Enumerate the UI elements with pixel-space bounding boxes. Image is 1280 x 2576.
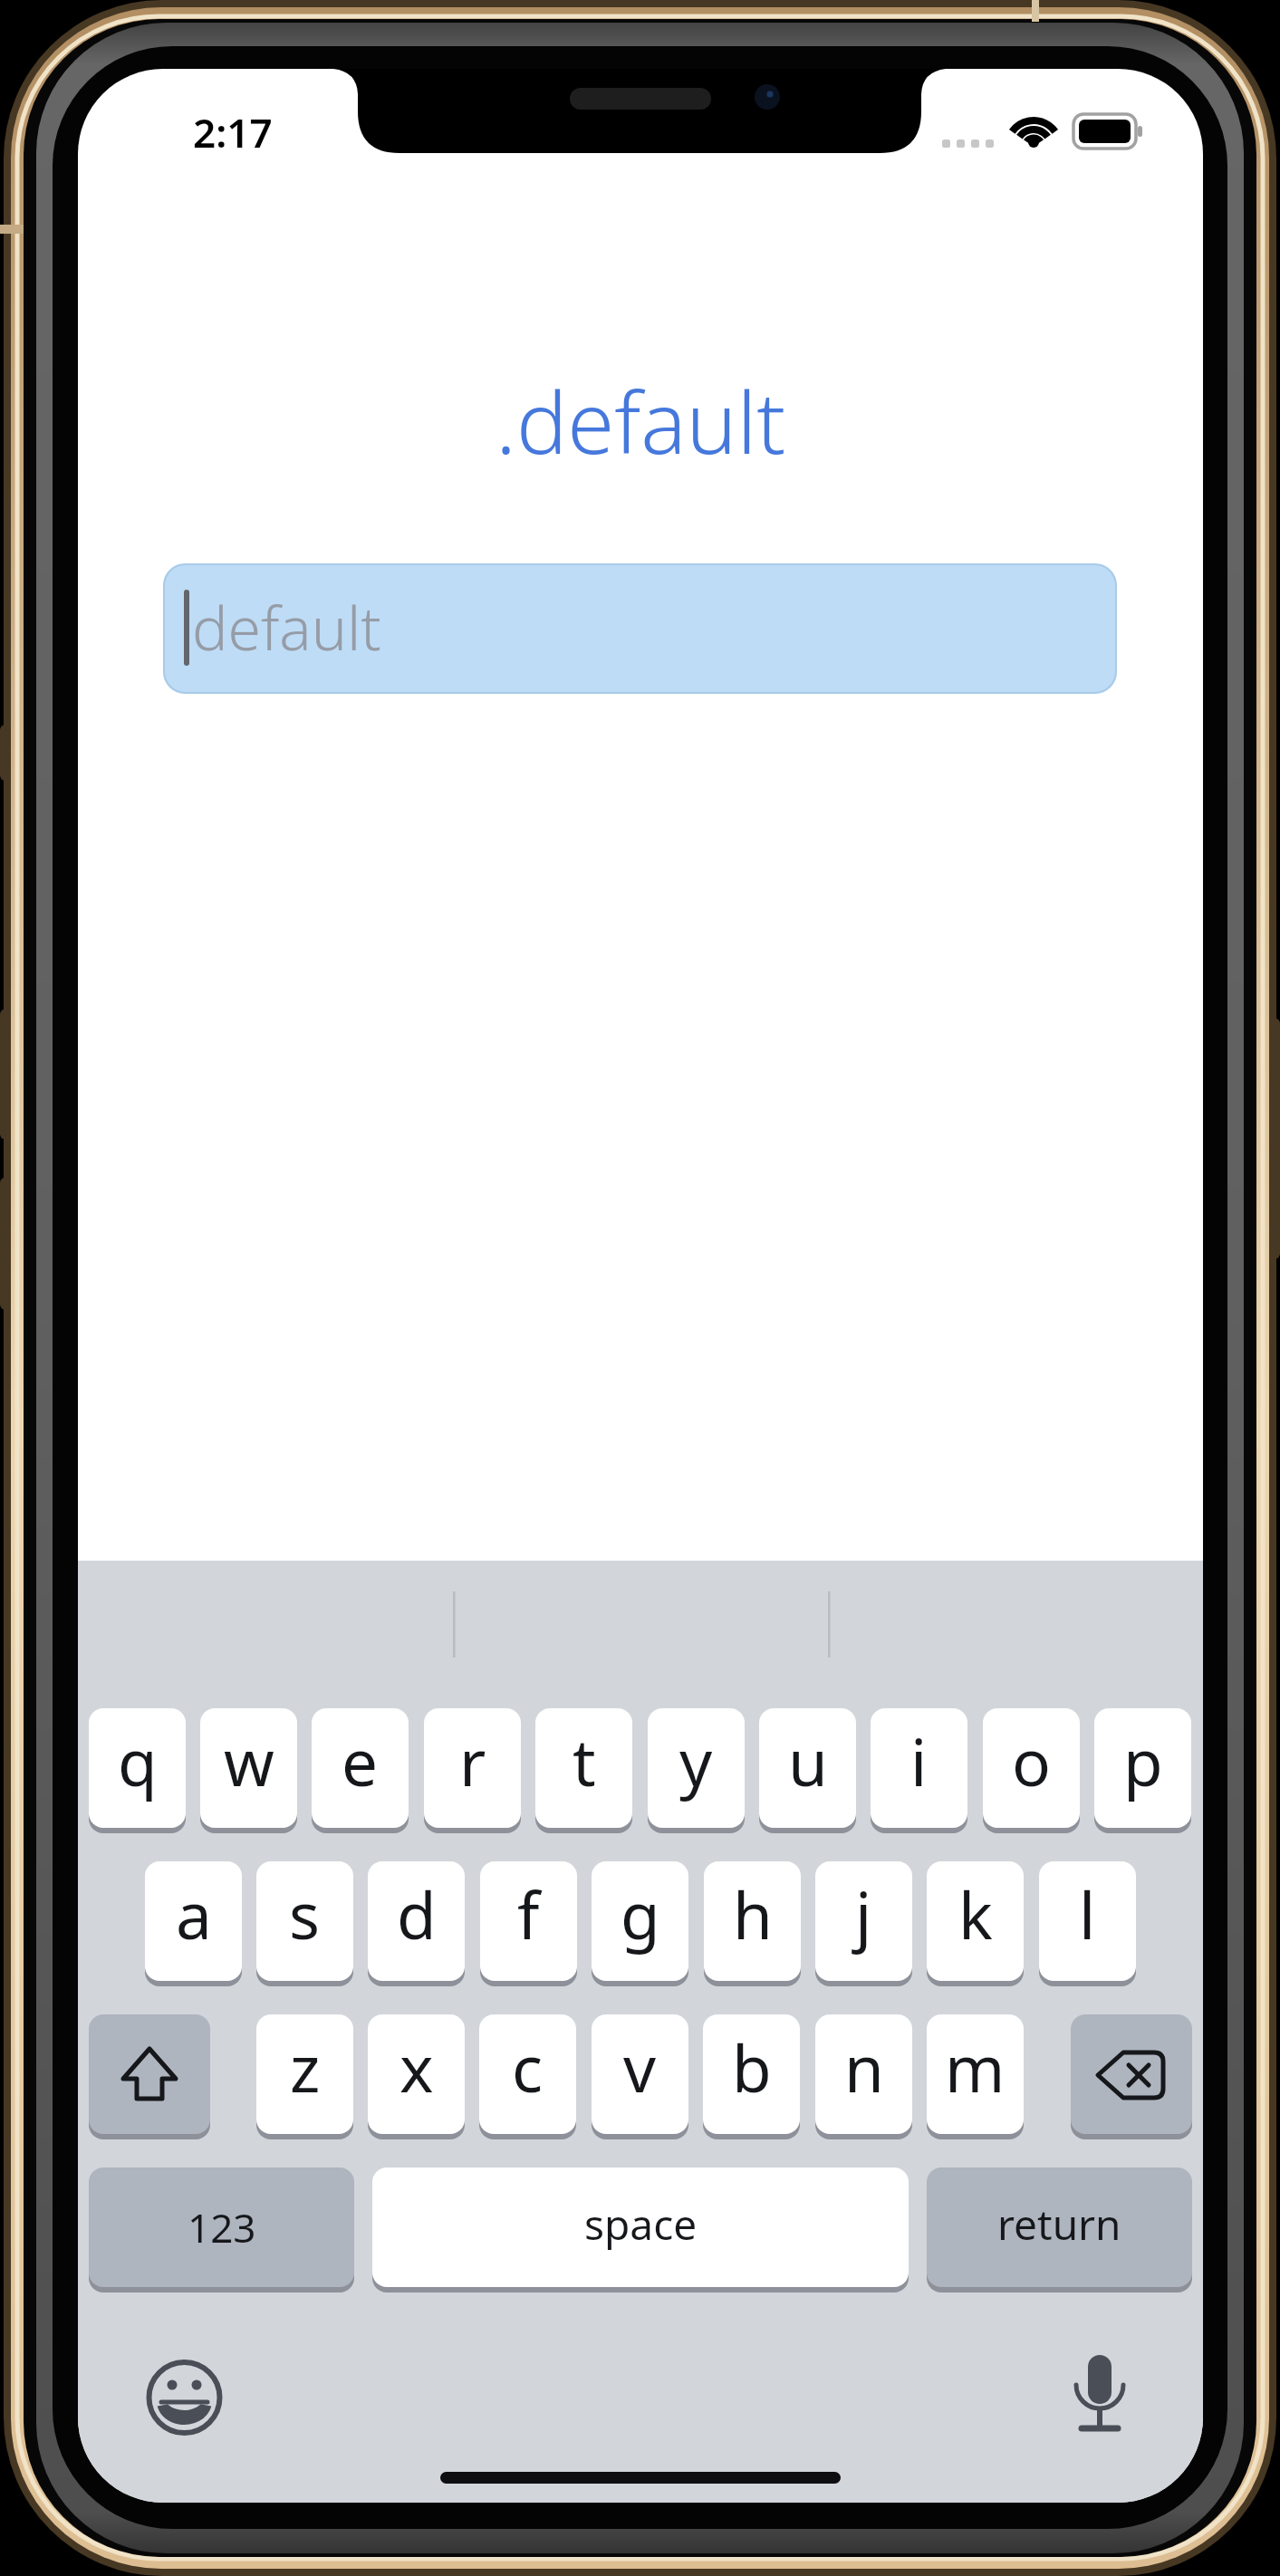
staticText: t	[573, 1717, 596, 1805]
button[interactable]: x	[368, 2014, 465, 2139]
staticText: n	[844, 2023, 884, 2111]
button[interactable]: r	[424, 1708, 521, 1833]
button[interactable]: w	[200, 1708, 297, 1833]
button[interactable]: s	[256, 1861, 353, 1986]
staticText: 123	[188, 2200, 256, 2254]
staticText: e	[342, 1717, 379, 1805]
button[interactable]: k	[927, 1861, 1024, 1986]
staticText: s	[289, 1870, 321, 1958]
staticText: .default	[496, 363, 786, 479]
staticText: space	[584, 2196, 698, 2253]
staticText: return	[997, 2196, 1121, 2253]
staticText: p	[1123, 1717, 1163, 1805]
button[interactable]: u	[759, 1708, 856, 1833]
staticText: z	[290, 2023, 321, 2111]
button[interactable]: e	[312, 1708, 409, 1833]
button[interactable]: 123	[89, 2167, 354, 2292]
button[interactable]: default	[163, 563, 1117, 694]
button[interactable]	[1071, 2014, 1192, 2139]
button[interactable]: f	[480, 1861, 577, 1986]
button[interactable]: space	[372, 2167, 909, 2292]
staticText: default	[192, 586, 381, 668]
button[interactable]: m	[927, 2014, 1024, 2139]
button[interactable]: h	[704, 1861, 801, 1986]
button[interactable]: a	[145, 1861, 242, 1986]
staticText: u	[788, 1717, 828, 1805]
staticText: v	[623, 2023, 657, 2111]
button[interactable]: q	[89, 1708, 186, 1833]
button[interactable]	[1063, 2355, 1136, 2433]
button[interactable]: y	[648, 1708, 745, 1833]
button[interactable]: b	[703, 2014, 800, 2139]
button[interactable]: z	[256, 2014, 353, 2139]
button[interactable]: g	[592, 1861, 688, 1986]
staticText: q	[118, 1717, 158, 1805]
button[interactable]: p	[1094, 1708, 1191, 1833]
staticText: a	[176, 1870, 212, 1958]
staticText: c	[512, 2023, 544, 2111]
button[interactable]: d	[368, 1861, 465, 1986]
button[interactable]: o	[983, 1708, 1080, 1833]
staticText: i	[910, 1717, 928, 1805]
button[interactable]: i	[871, 1708, 967, 1833]
button[interactable]	[89, 2014, 210, 2139]
staticText: l	[1079, 1870, 1096, 1958]
button[interactable]: return	[927, 2167, 1192, 2292]
button[interactable]	[149, 2362, 221, 2435]
button[interactable]: 2:17	[151, 105, 314, 159]
button[interactable]: n	[815, 2014, 912, 2139]
staticText: w	[224, 1717, 274, 1805]
staticText: b	[732, 2023, 772, 2111]
button[interactable]: l	[1039, 1861, 1136, 1986]
staticText: 2:17	[193, 105, 273, 159]
button[interactable]: v	[592, 2014, 688, 2139]
staticText: j	[855, 1870, 872, 1958]
staticText: x	[399, 2023, 434, 2111]
staticText: d	[397, 1870, 437, 1958]
staticText: k	[958, 1870, 993, 1958]
staticText: g	[621, 1870, 660, 1958]
staticText: y	[679, 1717, 713, 1805]
staticText: h	[733, 1870, 773, 1958]
staticText: m	[945, 2023, 1006, 2111]
button[interactable]: c	[479, 2014, 576, 2139]
staticText: o	[1012, 1717, 1051, 1805]
button[interactable]: t	[535, 1708, 632, 1833]
staticText: f	[517, 1870, 540, 1958]
staticText: r	[459, 1717, 486, 1805]
button[interactable]: j	[815, 1861, 912, 1986]
